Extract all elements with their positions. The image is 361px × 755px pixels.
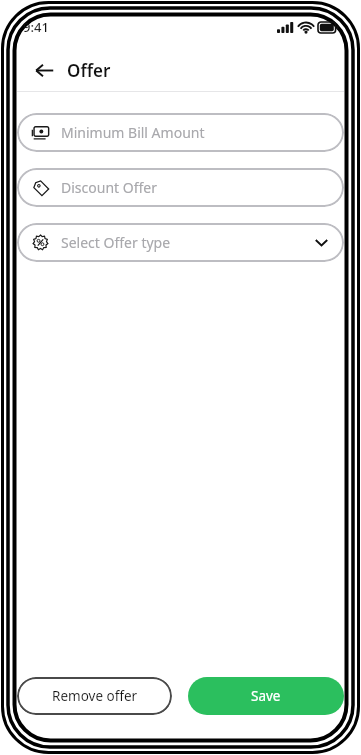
button[interactable]: Minimum Bill Amount (17, 113, 344, 152)
button[interactable]: Save (188, 677, 344, 715)
button[interactable]: Remove offer (17, 677, 172, 715)
staticText: Select Offer type (61, 233, 171, 252)
button[interactable]: Back (29, 55, 59, 85)
staticText: Offer (67, 59, 111, 82)
button[interactable]: Discount Offer (17, 168, 344, 207)
staticText: Minimum Bill Amount (61, 123, 205, 142)
staticText: 9:41 (23, 18, 49, 36)
staticText: Discount Offer (61, 178, 157, 197)
staticText: Save (251, 687, 281, 705)
button[interactable]: Select Offer type (17, 223, 344, 262)
staticText: Remove offer (52, 687, 138, 705)
